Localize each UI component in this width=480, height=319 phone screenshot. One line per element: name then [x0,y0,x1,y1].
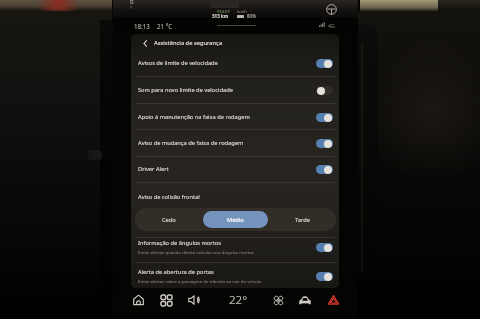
button[interactable]: Som para novo limite de velocidade [131,78,339,102]
button[interactable]: Toggle on [316,113,333,122]
staticText: Som para novo limite de velocidade [138,86,233,94]
staticText: Apoio à manutenção na faixa de rodagem [138,113,250,121]
staticText: Emite alertas quando deteta veículos nos… [138,249,254,255]
staticText: 22° [229,292,248,308]
button[interactable]: Apoio à manutenção na faixa de rodagem [131,105,339,129]
staticText: km/h [237,9,247,14]
button[interactable]: Avisos de limite de velocidade [131,51,339,75]
button[interactable]: Informação de ângulos mortos [131,235,339,259]
staticText: 4G [328,22,335,29]
staticText: Informação de ângulos mortos [138,239,221,247]
button[interactable]: Hazard lights [324,291,342,309]
button[interactable]: Car [296,291,314,309]
button[interactable]: Tarde [270,211,335,228]
staticText: 313 km [212,13,229,19]
staticText: Driver Alert [138,165,169,173]
button[interactable]: Home [129,291,147,309]
staticText: Emite alertas sobre a passagem de trânsi… [138,278,262,284]
staticText: D [130,0,134,6]
other: Back [141,40,148,47]
staticText: Aviso de mudança de faixa de rodagem [138,139,244,147]
staticText: Tarde [295,216,310,224]
button[interactable]: Back [131,34,339,52]
staticText: Aviso de colisão frontal [138,193,200,201]
button[interactable]: Aviso de mudança de faixa de rodagem [131,131,339,155]
staticText: READY [217,9,231,14]
button[interactable]: Toggle on [316,272,333,281]
button[interactable]: Toggle on [316,139,333,148]
staticText: Assistência de segurança [154,39,223,47]
button[interactable]: 22° [225,291,251,309]
button[interactable]: Driver Alert [131,157,339,181]
button[interactable]: Toggle on [316,59,333,68]
staticText: 80% [247,13,256,19]
button[interactable]: Médio [203,211,268,228]
button[interactable]: Toggle on [316,243,333,252]
staticText: P [130,5,133,10]
staticText: 18:13 [134,22,150,30]
button[interactable]: Toggle off [316,86,333,95]
staticText: Alerta de abertura de portas [138,268,214,276]
staticText: Avisos de limite de velocidade [138,59,218,67]
button[interactable]: Climate [269,291,287,309]
button[interactable]: Cedo [136,211,201,228]
button[interactable]: Alerta de abertura de portas [131,264,339,288]
button[interactable]: Toggle on [316,165,333,174]
staticText: Cedo [162,216,176,224]
staticText: Médio [227,216,244,224]
button[interactable]: Volume [185,291,203,309]
button[interactable]: Apps [157,291,175,309]
staticText: 21 °C [157,22,173,30]
